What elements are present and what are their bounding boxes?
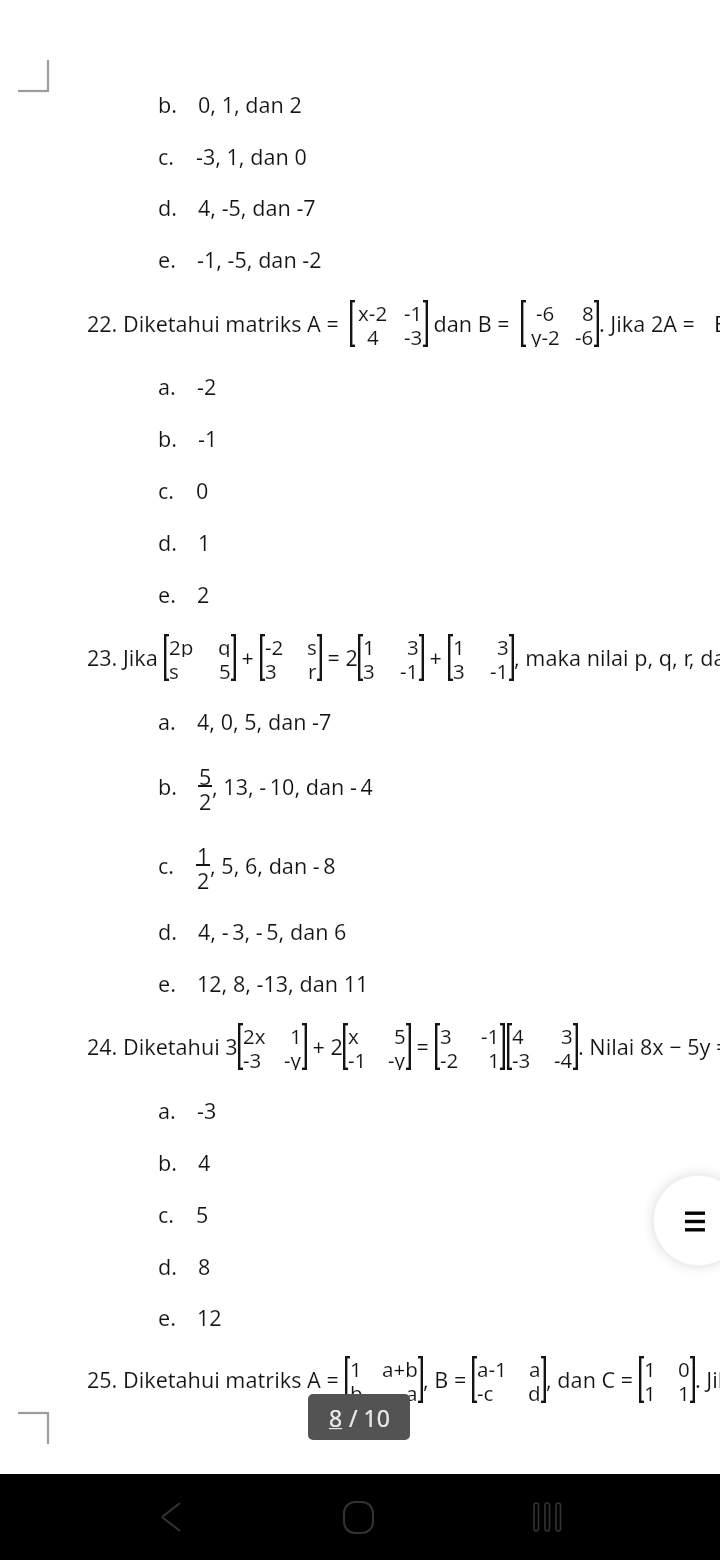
staticText: dan B =: [428, 309, 516, 338]
staticText: 12, 8, -13, dan 11: [197, 969, 369, 998]
staticText: -c: [477, 1379, 494, 1403]
staticText: -1: [198, 424, 218, 453]
staticText: -2: [265, 633, 284, 657]
staticText: 3: [453, 657, 465, 681]
staticText: 4, - 3, - 5, dan 6: [198, 917, 347, 946]
staticText: 8: [329, 1402, 343, 1433]
staticText: +: [424, 643, 448, 672]
staticText: a: [406, 1379, 418, 1403]
staticText: a.: [158, 372, 176, 401]
staticText: 1: [644, 1355, 656, 1379]
staticText: -6: [575, 323, 594, 347]
staticText: + 2: [307, 1032, 343, 1061]
staticText: c.: [158, 851, 175, 880]
staticText: x: [348, 1022, 359, 1046]
staticText: / 10: [343, 1402, 390, 1433]
staticText: a: [529, 1355, 541, 1379]
staticText: , dan C =: [546, 1365, 639, 1394]
staticText: , maka nilai p, q, r, dan s =: [514, 643, 720, 672]
staticText: 4, -5, dan -7: [198, 193, 316, 222]
staticText: 1: [350, 1355, 362, 1379]
staticText: a.: [158, 1096, 176, 1125]
staticText: d: [528, 1379, 541, 1403]
staticText: y-2: [531, 323, 560, 347]
staticText: e.: [158, 245, 176, 274]
staticText: d.: [158, 917, 177, 946]
staticText: -4: [554, 1046, 573, 1070]
staticText: . Nilai 8x − 5y =: [578, 1032, 720, 1061]
staticText: a.: [158, 707, 176, 736]
staticText: e.: [158, 1303, 176, 1332]
staticText: -2: [440, 1046, 459, 1070]
staticText: s: [169, 657, 179, 681]
staticText: b.: [158, 772, 177, 801]
staticText: 8: [582, 299, 594, 323]
staticText: 4: [198, 1148, 211, 1177]
staticText: 2: [197, 866, 210, 890]
staticText: B: [714, 309, 720, 338]
staticText: 1: [198, 528, 211, 557]
button[interactable]: 8: [308, 1394, 410, 1440]
staticText: 0, 1, dan 2: [198, 90, 302, 119]
staticText: 1: [678, 1379, 690, 1403]
button[interactable]: Back: [131, 1479, 211, 1555]
staticText: d.: [158, 193, 177, 222]
staticText: 0: [196, 476, 209, 505]
staticText: =: [411, 1032, 435, 1061]
button[interactable]: Recent apps: [506, 1479, 586, 1555]
staticText: d.: [158, 1252, 177, 1281]
staticText: b.: [158, 424, 177, 453]
staticText: 2p: [169, 633, 194, 657]
staticText: -2: [197, 372, 217, 401]
staticText: -1: [400, 657, 419, 681]
staticText: 12: [197, 1303, 222, 1332]
staticText: 5: [196, 1200, 209, 1229]
staticText: c.: [158, 476, 175, 505]
staticText: x-2: [358, 299, 388, 323]
staticText: 3: [561, 1022, 573, 1046]
staticText: 1: [363, 633, 375, 657]
staticText: 2x: [243, 1022, 266, 1046]
staticText: e.: [158, 580, 176, 609]
staticText: 3: [265, 657, 277, 681]
staticText: -3: [197, 1096, 217, 1125]
staticText: 4: [512, 1022, 524, 1046]
staticText: -3: [404, 323, 423, 347]
staticText: 24. Diketahui 3: [87, 1032, 238, 1061]
staticText: -3: [243, 1046, 262, 1070]
staticText: = 2: [322, 643, 358, 672]
staticText: 4: [367, 323, 379, 347]
staticText: , 13, - 10, dan - 4: [212, 772, 373, 801]
staticText: c.: [158, 142, 175, 171]
staticText: -6: [536, 299, 555, 323]
staticText: -1: [348, 1046, 367, 1070]
staticText: a-1: [477, 1355, 507, 1379]
staticText: , B =: [423, 1365, 472, 1394]
staticText: 1: [197, 841, 210, 864]
staticText: -3: [512, 1046, 531, 1070]
staticText: 3: [440, 1022, 452, 1046]
staticText: . Jika 2A =: [599, 309, 701, 338]
staticText: -1: [404, 299, 423, 323]
staticText: 3: [363, 657, 375, 681]
button[interactable]: Menu: [654, 1176, 720, 1265]
staticText: s: [307, 633, 317, 657]
staticText: 5: [199, 762, 212, 785]
staticText: 1: [453, 633, 465, 657]
staticText: d.: [158, 528, 177, 557]
staticText: 5: [394, 1022, 406, 1046]
staticText: +: [236, 643, 260, 672]
staticText: 3: [497, 633, 509, 657]
staticText: e.: [158, 969, 176, 998]
staticText: 5: [219, 657, 231, 681]
staticText: r: [308, 657, 317, 681]
button[interactable]: Home: [318, 1479, 398, 1555]
staticText: q: [218, 633, 231, 657]
staticText: c.: [158, 1200, 175, 1229]
staticText: 2: [199, 787, 212, 811]
staticText: 8: [198, 1252, 211, 1281]
staticText: -1, -5, dan -2: [197, 245, 322, 274]
staticText: b: [350, 1379, 363, 1403]
staticText: 1: [488, 1046, 500, 1070]
staticText: 2: [197, 580, 210, 609]
